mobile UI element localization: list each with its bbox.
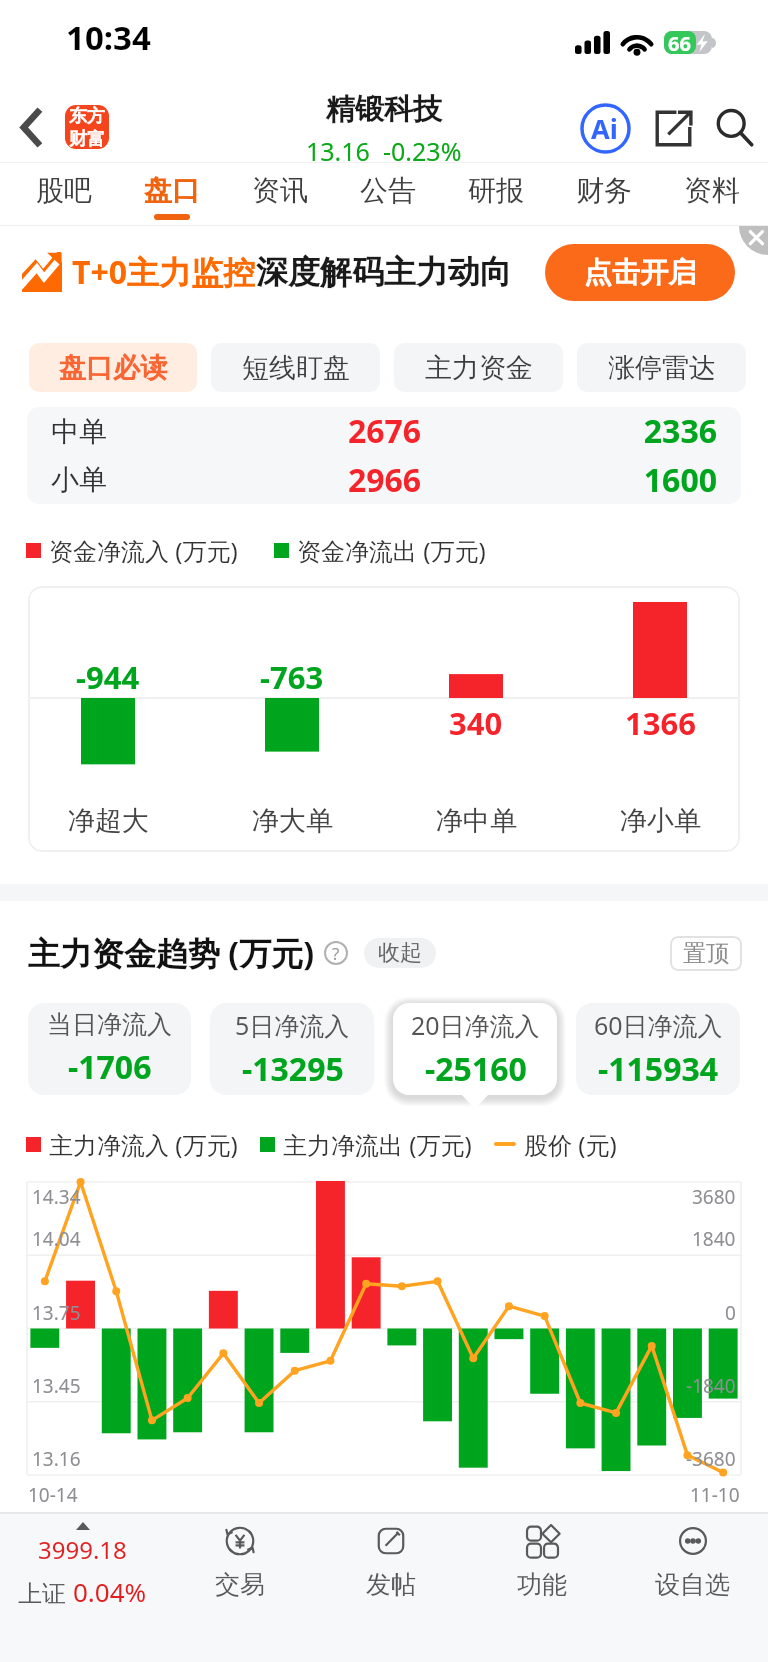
button[interactable]: Close banner bbox=[739, 226, 768, 255]
staticText: 340 bbox=[449, 702, 503, 744]
staticText: 主力净流出 (万元) bbox=[283, 1128, 472, 1160]
staticText: -763 bbox=[260, 656, 324, 698]
staticText: 功能 bbox=[517, 1569, 567, 1600]
staticText: 0 bbox=[725, 1300, 736, 1326]
button[interactable]: 交易 bbox=[164, 1514, 315, 1662]
button[interactable]: 主力资金 bbox=[394, 343, 563, 392]
button[interactable]: 涨停雷达 bbox=[577, 343, 746, 392]
staticText: 10-14 bbox=[28, 1482, 78, 1508]
staticText: 财富 bbox=[69, 128, 105, 149]
staticText: 资金净流出 (万元) bbox=[297, 534, 486, 566]
staticText: 3680 bbox=[692, 1184, 736, 1210]
button[interactable]: 盘口必读 bbox=[29, 343, 197, 392]
staticText: 置顶 bbox=[683, 939, 729, 968]
staticText: 净小单 bbox=[620, 804, 701, 838]
button[interactable]: 资讯 bbox=[226, 163, 334, 226]
staticText: 资讯 bbox=[252, 173, 308, 208]
button[interactable]: Search bbox=[707, 100, 763, 156]
staticText: -115934 bbox=[598, 1047, 719, 1091]
staticText: 财务 bbox=[576, 173, 632, 208]
staticText: -25160 bbox=[425, 1047, 527, 1091]
staticText: 2676 bbox=[270, 409, 499, 453]
staticText: 盘口 bbox=[144, 173, 200, 208]
button[interactable]: 3999.18 bbox=[0, 1514, 164, 1662]
button[interactable]: 5日净流入 bbox=[210, 1003, 374, 1095]
staticText: 13.16 bbox=[306, 134, 370, 168]
button[interactable]: AI assistant bbox=[577, 100, 633, 156]
button[interactable]: 短线盯盘 bbox=[211, 343, 380, 392]
staticText: 股价 (元) bbox=[524, 1128, 617, 1160]
button[interactable]: 财务 bbox=[550, 163, 658, 226]
staticText: 14.04 bbox=[32, 1226, 81, 1252]
staticText: -1706 bbox=[68, 1045, 152, 1089]
staticText: 涨停雷达 bbox=[608, 351, 716, 385]
staticText: 1840 bbox=[692, 1226, 736, 1252]
staticText: 20日净流入 bbox=[411, 1008, 540, 1042]
staticText: 中单 bbox=[51, 414, 270, 449]
button[interactable]: 功能 bbox=[466, 1514, 617, 1662]
button[interactable]: 点击开启 bbox=[545, 244, 735, 301]
staticText: 净超大 bbox=[68, 804, 149, 838]
staticText: 11-10 bbox=[690, 1482, 740, 1508]
button[interactable]: 研报 bbox=[442, 163, 550, 226]
staticText: 净中单 bbox=[436, 804, 517, 838]
staticText: 2336 bbox=[499, 409, 717, 453]
staticText: 当日净流入 bbox=[47, 1009, 172, 1040]
button[interactable]: 资料 bbox=[658, 163, 766, 226]
staticText: 13.16 bbox=[32, 1446, 81, 1472]
staticText: -0.23% bbox=[383, 134, 462, 168]
staticText: 资料 bbox=[684, 173, 740, 208]
staticText: T+0主力监控 bbox=[72, 250, 256, 294]
staticText: 主力资金 bbox=[425, 351, 533, 385]
staticText: 10:34 bbox=[66, 15, 151, 60]
staticText: 交易 bbox=[215, 1569, 265, 1600]
button[interactable]: 收起 bbox=[364, 938, 436, 968]
staticText: 短线盯盘 bbox=[242, 351, 350, 385]
staticText: 股吧 bbox=[36, 173, 92, 208]
staticText: 5日净流入 bbox=[235, 1008, 350, 1042]
staticText: 发帖 bbox=[366, 1569, 416, 1600]
staticText: 深度解码主力动向 bbox=[256, 252, 512, 292]
button[interactable]: 置顶 bbox=[670, 936, 742, 971]
staticText: 14.34 bbox=[32, 1184, 81, 1210]
staticText: -3680 bbox=[686, 1446, 736, 1472]
staticText: 设自选 bbox=[655, 1569, 730, 1600]
staticText: -13295 bbox=[242, 1047, 344, 1091]
button[interactable]: 发帖 bbox=[315, 1514, 466, 1662]
staticText: 主力资金趋势 (万元) bbox=[28, 931, 315, 975]
staticText: -1840 bbox=[686, 1373, 736, 1399]
staticText: 上证 bbox=[18, 1576, 73, 1609]
staticText: 精锻科技 bbox=[326, 91, 442, 128]
staticText: 研报 bbox=[468, 173, 524, 208]
button[interactable]: 盘口 bbox=[118, 163, 226, 226]
staticText: 13.75 bbox=[32, 1300, 81, 1326]
staticText: 资金净流入 (万元) bbox=[49, 534, 238, 566]
staticText: 3999.18 bbox=[38, 1533, 127, 1566]
button[interactable]: 股吧 bbox=[10, 163, 118, 226]
staticText: 1366 bbox=[625, 702, 696, 744]
staticText: 公告 bbox=[360, 173, 416, 208]
staticText: ? bbox=[332, 942, 340, 965]
button[interactable]: Help bbox=[324, 941, 348, 965]
button[interactable]: 设自选 bbox=[617, 1514, 768, 1662]
staticText: 2966 bbox=[270, 458, 499, 502]
button[interactable]: Back bbox=[8, 105, 52, 149]
staticText: 净大单 bbox=[252, 804, 333, 838]
staticText: 60日净流入 bbox=[594, 1008, 723, 1042]
staticText: 1600 bbox=[499, 458, 717, 502]
staticText: 盘口必读 bbox=[59, 351, 167, 385]
staticText: 66 bbox=[668, 30, 691, 53]
staticText: 主力净流入 (万元) bbox=[49, 1128, 238, 1160]
staticText: Ai bbox=[591, 110, 618, 147]
button[interactable]: Share bbox=[645, 100, 701, 156]
button[interactable]: 60日净流入 bbox=[576, 1003, 740, 1095]
button[interactable]: East Money home bbox=[65, 105, 109, 149]
staticText: -944 bbox=[76, 656, 140, 698]
staticText: 东方 bbox=[69, 105, 105, 128]
button[interactable]: 当日净流入 bbox=[28, 1003, 191, 1095]
staticText: 收起 bbox=[378, 939, 422, 967]
button[interactable]: 公告 bbox=[334, 163, 442, 226]
button[interactable]: 20日净流入 bbox=[393, 1003, 557, 1095]
staticText: 点击开启 bbox=[584, 255, 696, 290]
staticText: 13.45 bbox=[32, 1373, 81, 1399]
